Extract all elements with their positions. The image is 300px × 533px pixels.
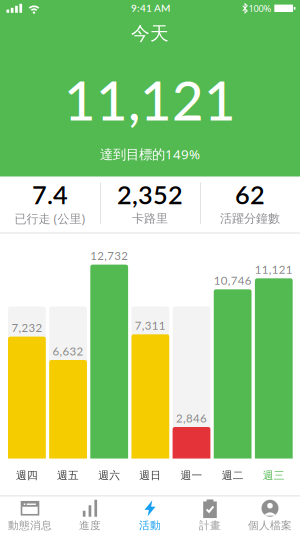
staticText: 週五 — [57, 469, 79, 482]
staticText: 活躍分鐘數 — [220, 211, 280, 226]
staticText: 進度 — [79, 519, 101, 532]
staticText: 6,632 — [52, 344, 83, 358]
staticText: 10,746 — [214, 273, 252, 287]
staticText: 今天 — [131, 22, 169, 45]
staticText: 11,121 — [64, 67, 236, 132]
staticText: 週三 — [263, 469, 285, 482]
button[interactable]: 進度 — [60, 496, 120, 533]
staticText: 個人檔案 — [248, 519, 292, 532]
staticText: 週二 — [222, 469, 244, 482]
staticText: 11,121 — [255, 262, 293, 276]
staticText: 週六 — [98, 469, 120, 482]
staticText: 2,846 — [176, 411, 207, 425]
staticText: 週日 — [139, 469, 161, 482]
staticText: 12,732 — [90, 249, 128, 262]
staticText: 已行走 (公里) — [14, 210, 85, 226]
staticText: 100% — [248, 2, 271, 14]
staticText: 62 — [235, 179, 265, 210]
staticText: 7.4 — [32, 179, 68, 210]
staticText: 達到目標的149% — [100, 145, 200, 163]
staticText: 週四 — [16, 469, 38, 482]
staticText: 9:41 AM — [131, 2, 170, 14]
button[interactable]: 動態消息 — [0, 496, 60, 533]
button[interactable]: 個人檔案 — [240, 496, 300, 533]
staticText: 7,232 — [11, 321, 42, 334]
staticText: 卡路里 — [132, 211, 168, 226]
staticText: 活動 — [139, 519, 161, 532]
staticText: 計畫 — [199, 519, 221, 532]
staticText: 2,352 — [117, 179, 183, 210]
staticText: 動態消息 — [8, 519, 52, 532]
button[interactable]: 計畫 — [180, 496, 240, 533]
staticText: 週一 — [180, 469, 202, 482]
staticText: 7,311 — [135, 318, 166, 332]
button[interactable]: 活動 — [120, 496, 180, 533]
